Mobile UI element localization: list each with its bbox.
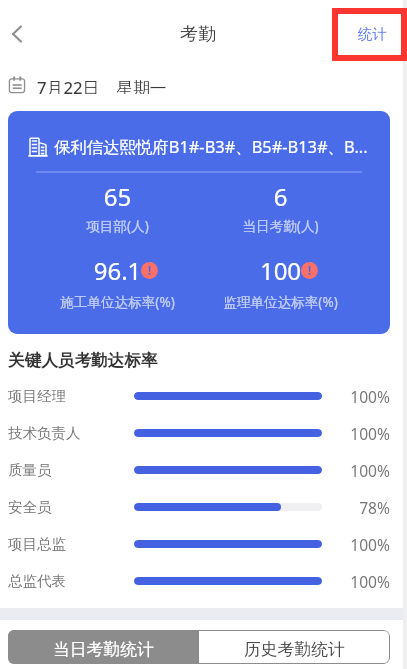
button[interactable]: 质量员: [0, 459, 407, 481]
staticText: !: [148, 263, 152, 279]
staticText: 项目总监: [8, 535, 66, 553]
staticText: 总监代表: [8, 572, 66, 590]
staticText: 安全员: [8, 498, 52, 516]
staticText: 7月22日 星期一: [37, 76, 167, 94]
staticText: !: [308, 263, 312, 279]
staticText: 96.1: [36, 254, 199, 287]
staticText: 100%: [350, 534, 390, 555]
staticText: 项目部(人): [36, 216, 199, 235]
button[interactable]: 当日考勤统计: [8, 630, 199, 664]
staticText: 100%: [350, 386, 390, 407]
staticText: 施工单位达标率(%): [36, 292, 199, 311]
staticText: 当日考勤(人): [199, 216, 362, 235]
staticText: 监理单位达标率(%): [199, 292, 362, 311]
staticText: 78%: [359, 497, 390, 518]
staticText: 100: [199, 254, 362, 287]
staticText: 100%: [350, 423, 390, 444]
staticText: 6: [199, 180, 362, 213]
staticText: 历史考勤统计: [244, 639, 345, 660]
button[interactable]: Back: [0, 12, 39, 56]
staticText: 技术负责人: [8, 424, 81, 442]
button[interactable]: 项目经理: [0, 385, 407, 407]
staticText: 关键人员考勤达标率: [8, 350, 158, 369]
button[interactable]: 项目总监: [0, 533, 407, 555]
staticText: 质量员: [8, 461, 52, 479]
staticText: 保利信达熙悦府B1#-B3#、B5#-B13#、B...: [54, 135, 368, 155]
button[interactable]: 总监代表: [0, 570, 407, 592]
staticText: 当日考勤统计: [53, 639, 154, 660]
staticText: 100%: [350, 460, 390, 481]
button[interactable]: 统计: [348, 20, 396, 48]
button[interactable]: 安全员: [0, 496, 407, 518]
staticText: 100%: [350, 571, 390, 592]
button[interactable]: 历史考勤统计: [199, 630, 390, 664]
staticText: 65: [36, 180, 199, 213]
staticText: 统计: [358, 25, 387, 43]
button[interactable]: 技术负责人: [0, 422, 407, 444]
button[interactable]: 保利信达熙悦府B1#-B3#、B5#-B13#、B...: [8, 111, 390, 334]
staticText: 项目经理: [8, 387, 66, 405]
staticText: 考勤: [180, 23, 216, 45]
